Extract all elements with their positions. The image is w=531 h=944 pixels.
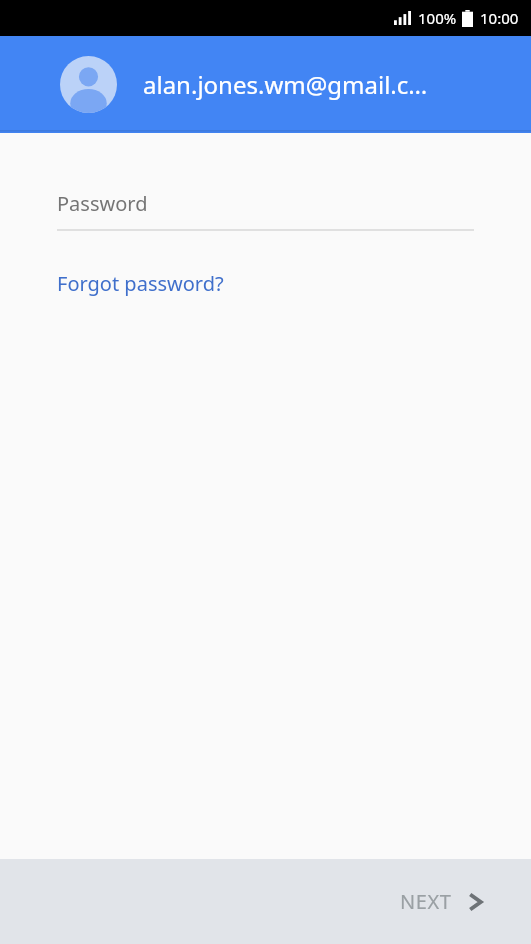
staticText: Forgot password? [57,270,224,297]
button[interactable]: Forgot password? [57,270,224,297]
staticText: 100% [418,8,457,28]
staticText: 10:00 [480,8,519,28]
button[interactable]: Account avatar [60,56,511,113]
staticText: Password [57,190,148,217]
button[interactable]: NEXT [388,878,495,925]
other: Account avatar [60,56,117,113]
button[interactable]: Password [57,190,474,231]
staticText: NEXT [400,888,452,915]
staticText: alan.jones.wm@gmail.c… [143,68,428,101]
